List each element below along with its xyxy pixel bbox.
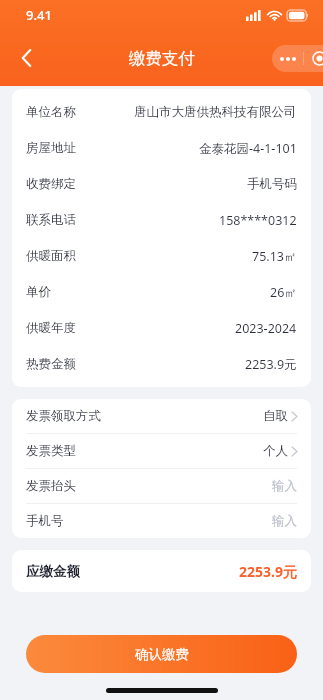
staticText: 供暖年度 [26, 320, 76, 336]
staticText: 2253.9元 [245, 356, 297, 373]
staticText: 个人 [263, 443, 288, 459]
staticText: 联系电话 [26, 212, 76, 228]
staticText: 供暖面积 [26, 248, 76, 264]
staticText: 75.13㎡ [252, 248, 297, 265]
button[interactable]: 发票抬头 [12, 469, 311, 504]
button[interactable]: 手机号 [12, 504, 311, 538]
staticText: 收费绑定 [26, 176, 76, 192]
button[interactable]: 发票类型 [12, 434, 311, 469]
button[interactable]: 发票领取方式 [12, 399, 311, 434]
staticText: 9.41 [26, 6, 52, 24]
staticText: 26㎡ [270, 284, 297, 301]
staticText: 手机号 [26, 513, 64, 529]
staticText: 单价 [26, 284, 51, 300]
staticText: 热费金额 [26, 356, 76, 372]
staticText: 手机号码 [247, 176, 297, 192]
staticText: 2253.9元 [239, 562, 297, 581]
staticText: 2023-2024 [235, 320, 297, 337]
staticText: 金泰花园-4-1-101 [199, 140, 297, 157]
staticText: 房屋地址 [26, 140, 76, 156]
staticText: 158****0312 [219, 212, 297, 229]
staticText: 确认缴费 [135, 646, 189, 663]
staticText: 输入 [272, 513, 297, 529]
button[interactable]: Close [304, 45, 323, 72]
button[interactable]: More [272, 45, 303, 72]
staticText: 单位名称 [26, 104, 76, 120]
staticText: 发票类型 [26, 443, 76, 459]
button[interactable]: Back [6, 38, 46, 78]
staticText: 唐山市大唐供热科技有限公司 [134, 104, 297, 120]
button[interactable]: 确认缴费 [26, 635, 297, 673]
staticText: 应缴金额 [26, 563, 80, 580]
staticText: 缴费支付 [129, 48, 195, 69]
staticText: 发票领取方式 [26, 408, 101, 424]
staticText: 输入 [272, 478, 297, 494]
staticText: 自取 [263, 408, 288, 424]
staticText: 发票抬头 [26, 478, 76, 494]
